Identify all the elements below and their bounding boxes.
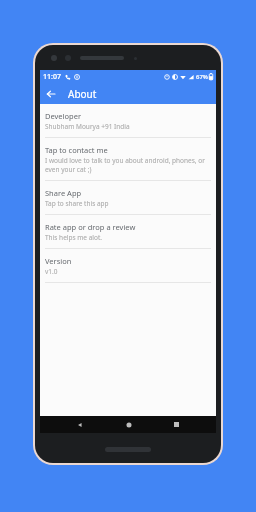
staticText: I would love to talk to you about androi… [45, 156, 209, 174]
staticText: Tap to contact me [45, 145, 108, 155]
button[interactable]: Home [120, 416, 137, 433]
staticText: v1.0 [45, 267, 58, 276]
button[interactable]: Developer [40, 104, 216, 138]
staticText: Tap to share this app [45, 199, 109, 208]
button[interactable]: Back [71, 416, 88, 433]
button[interactable]: Tap to contact me [40, 138, 216, 181]
staticText: Developer [45, 111, 82, 121]
button[interactable]: Recent apps [168, 416, 185, 433]
button[interactable]: Share App [40, 181, 216, 215]
button[interactable]: Navigate up [40, 83, 61, 104]
button[interactable]: Version [40, 249, 216, 283]
staticText: Share App [45, 188, 82, 198]
staticText: Version [45, 256, 72, 266]
staticText: 67% [196, 73, 208, 81]
staticText: 11:07 [43, 72, 61, 82]
staticText: Rate app or drop a review [45, 222, 136, 232]
staticText: About [68, 87, 97, 101]
button[interactable]: Rate app or drop a review [40, 215, 216, 249]
staticText: Shubham Mourya +91 India [45, 122, 130, 131]
staticText: This helps me alot. [45, 233, 103, 242]
